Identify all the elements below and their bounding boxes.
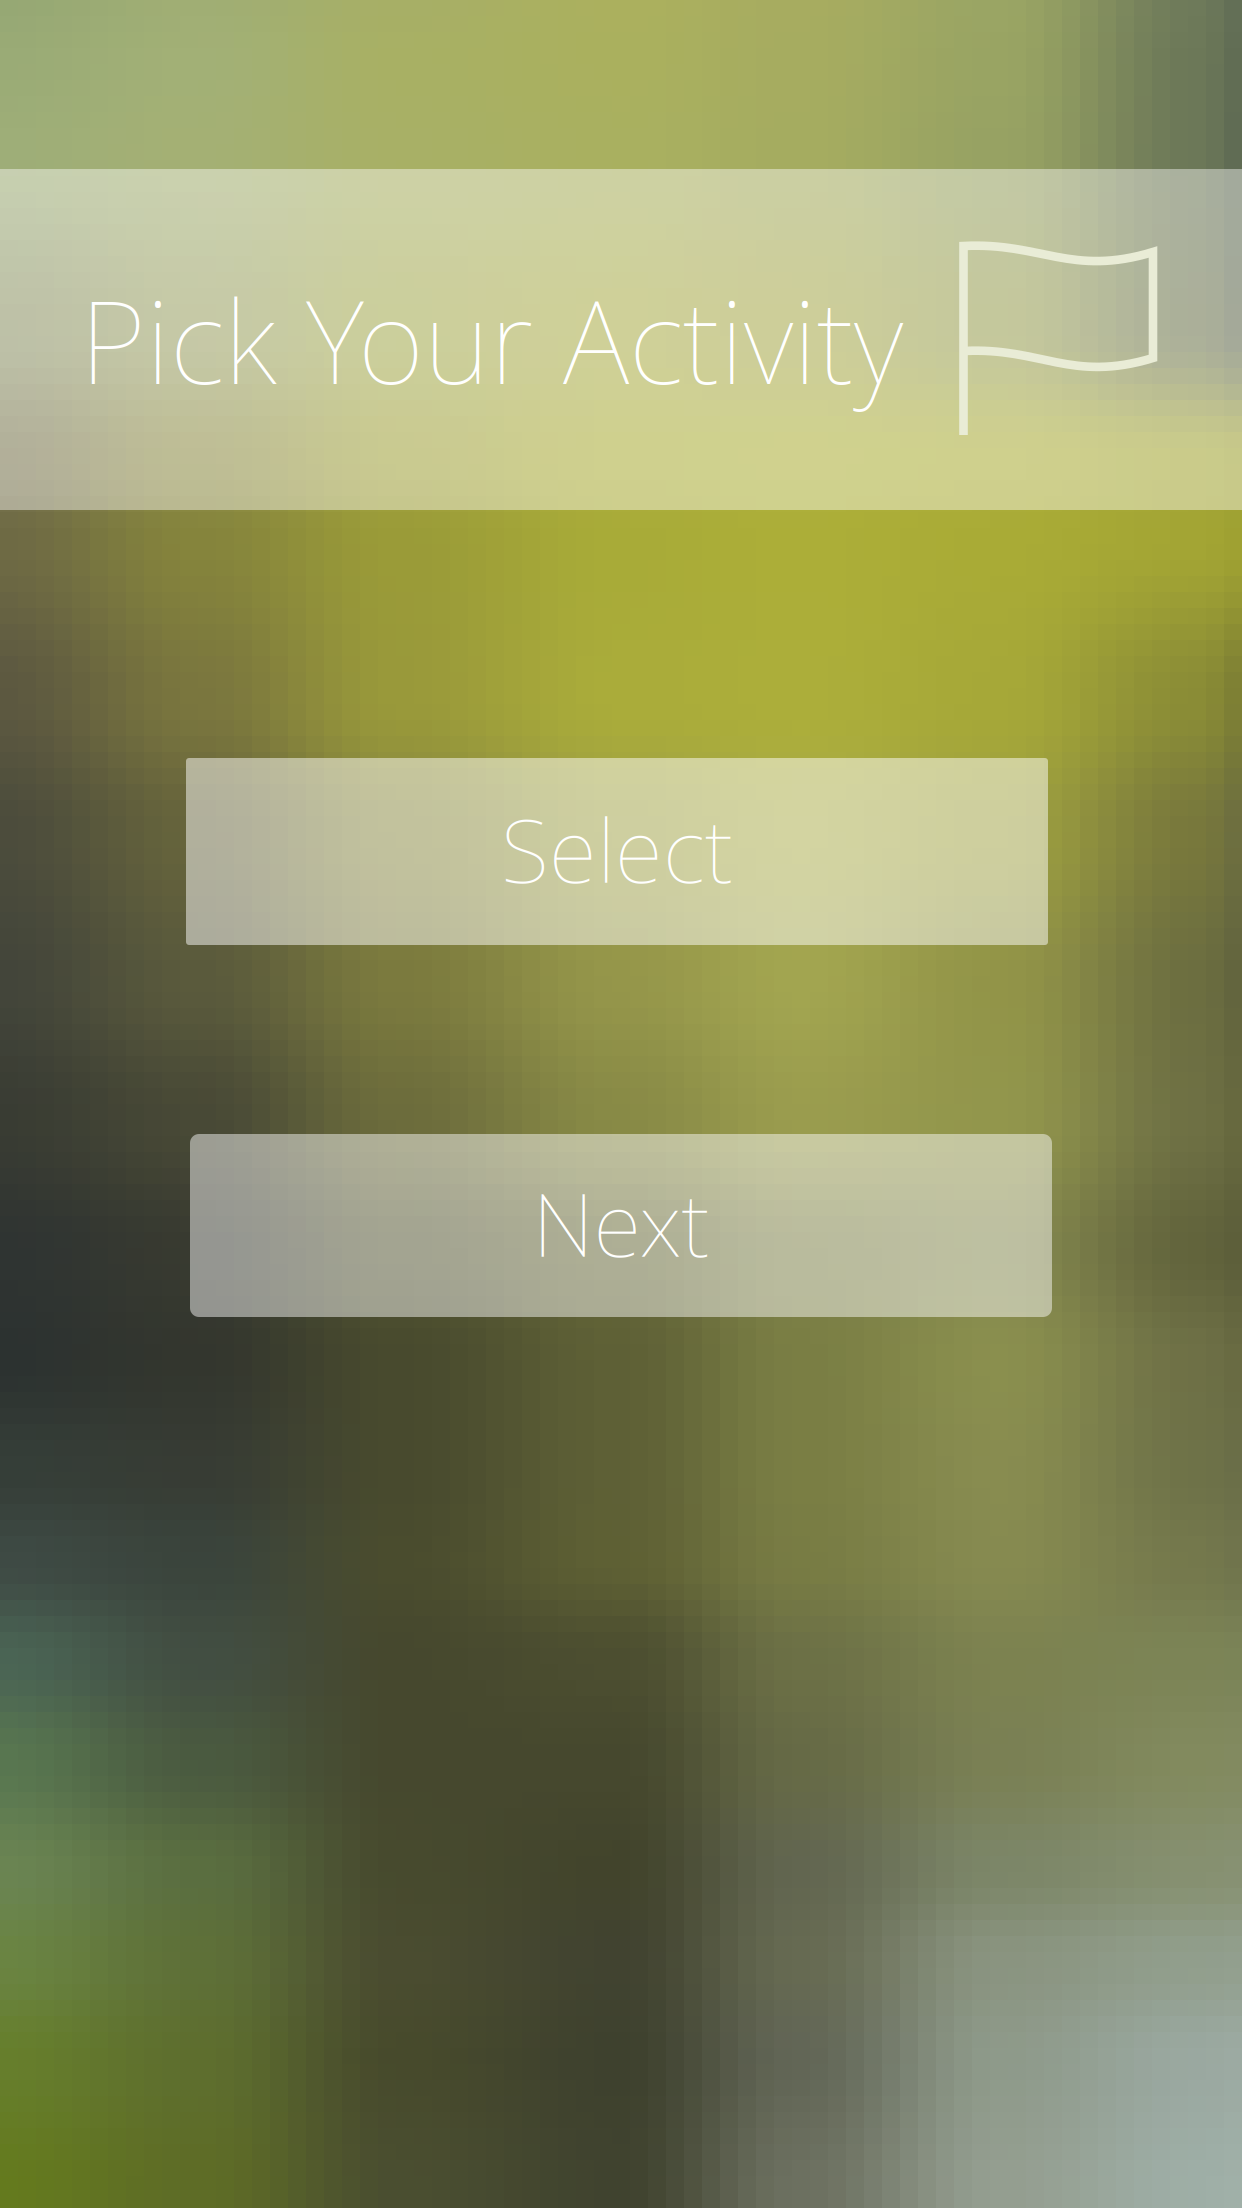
staticText: Select [501,789,733,908]
button[interactable]: Select [186,758,1048,945]
button[interactable]: Next [190,1134,1052,1317]
button[interactable]: Flag activity [959,239,1158,440]
staticText: Next [532,1163,709,1282]
staticText: Pick Your Activity [80,261,903,418]
